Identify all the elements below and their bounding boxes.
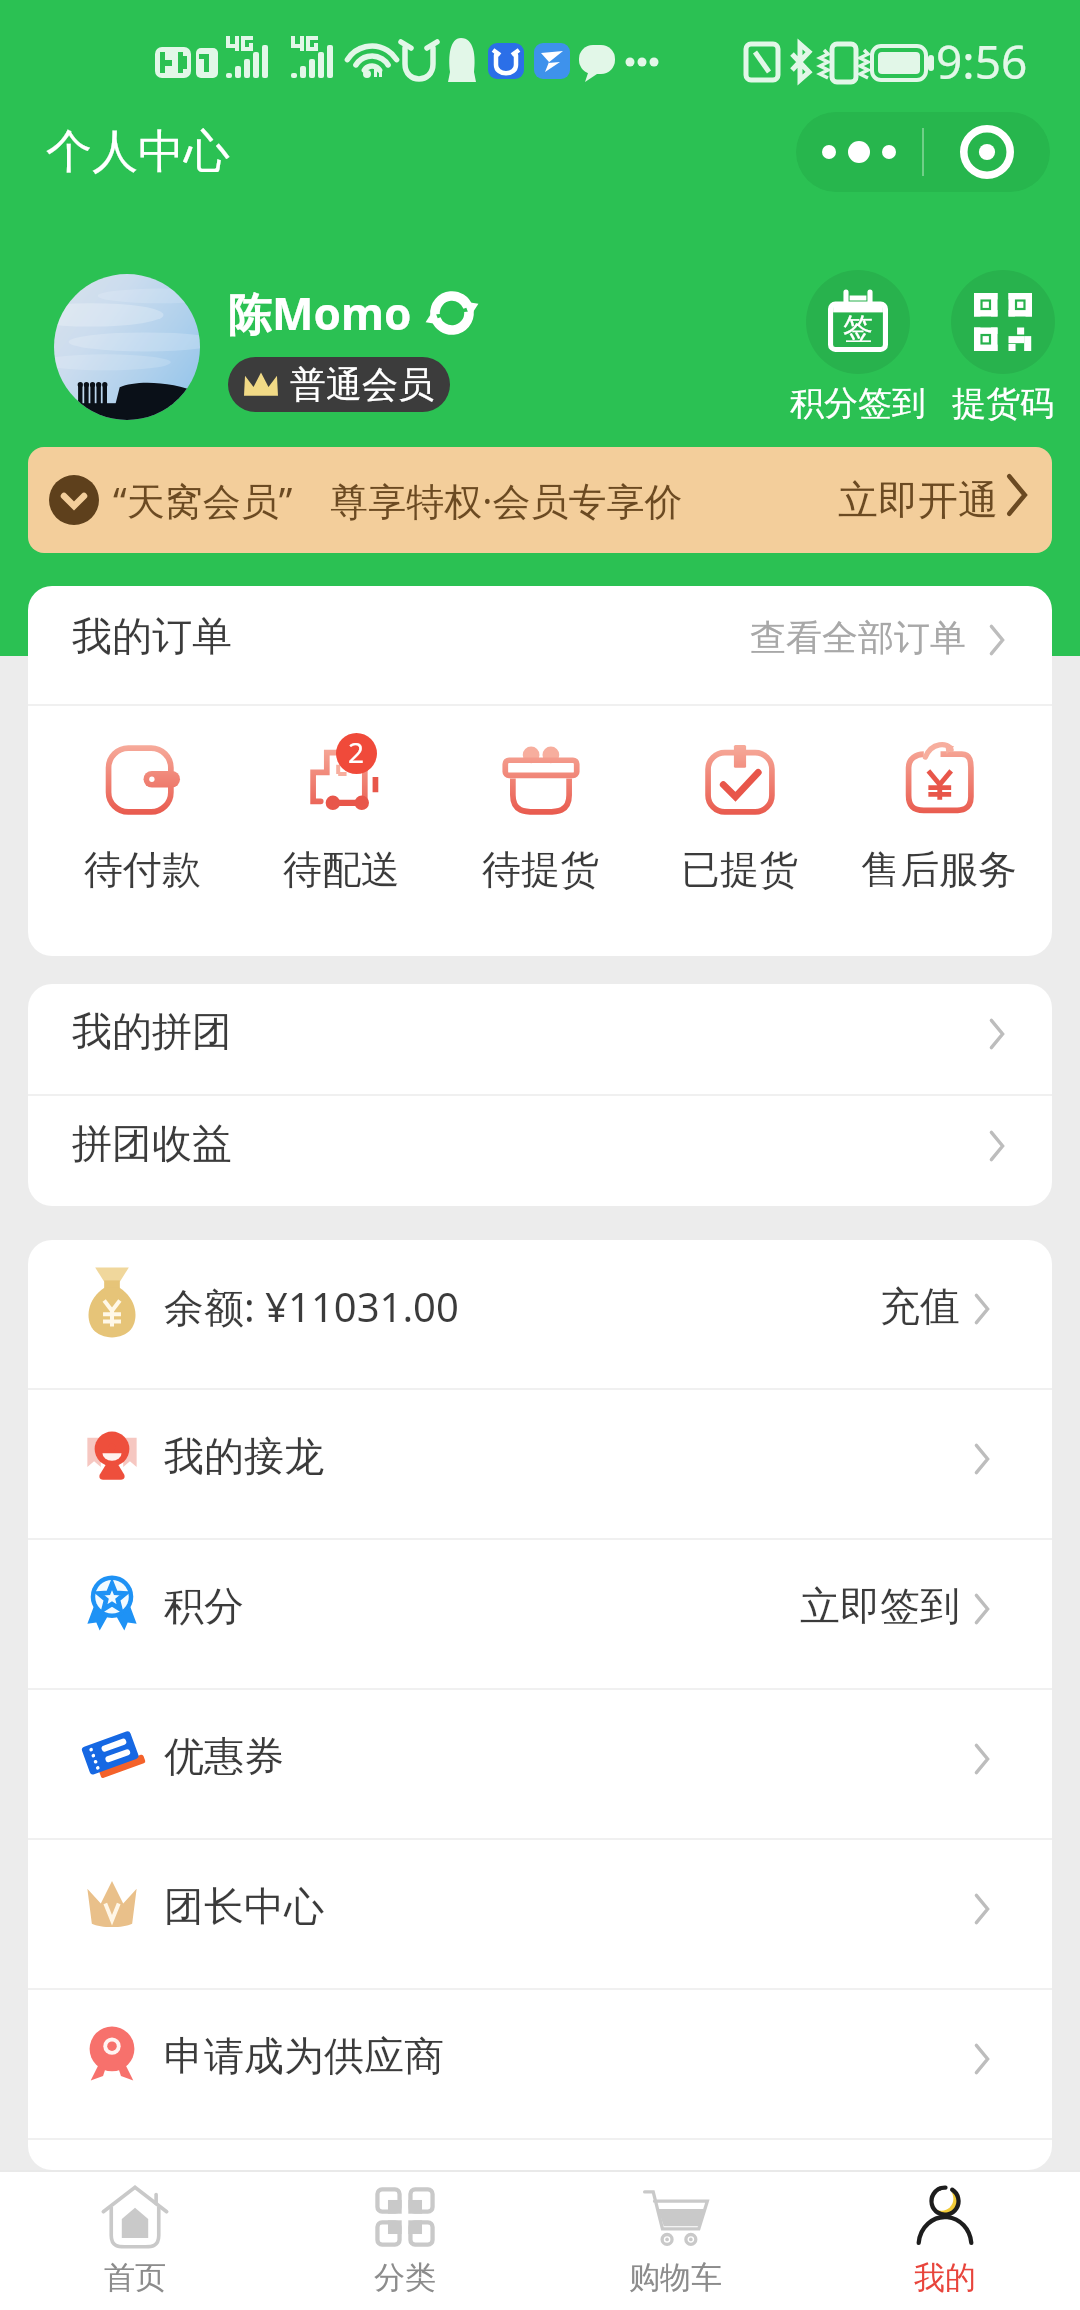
staticText: 普通会员	[290, 362, 434, 407]
staticText: 个人中心	[46, 123, 230, 181]
staticText: 申请成为供应商	[164, 2031, 444, 2081]
staticText: 首页	[104, 2258, 166, 2297]
staticText: 待付款	[84, 845, 201, 894]
staticText: 2	[348, 733, 365, 771]
button[interactable]: 我的	[810, 2172, 1080, 2310]
staticText: 立即签到	[800, 1581, 960, 1631]
button[interactable]: Pickup code	[930, 270, 1075, 425]
staticText: 我的订单	[72, 611, 232, 661]
button[interactable]: 拼团收益	[28, 1096, 1052, 1206]
button[interactable]	[54, 274, 200, 420]
button[interactable]: 已提货	[640, 706, 839, 956]
staticText: 优惠券	[164, 1731, 284, 1781]
staticText: 查看全部订单	[750, 615, 966, 660]
staticText: 提货码	[952, 382, 1054, 425]
button[interactable]: Mini program menu	[796, 112, 1050, 192]
button[interactable]: 购物车	[540, 2172, 810, 2310]
button[interactable]: 我的拼团	[28, 984, 1052, 1094]
staticText: 团长中心	[164, 1881, 324, 1931]
button[interactable]: 普通会员	[244, 362, 434, 407]
staticText: “天窝会员” 尊享特权·会员专享价	[113, 474, 683, 526]
button[interactable]: 首页	[0, 2172, 270, 2310]
staticText: 充值	[880, 1281, 960, 1331]
button[interactable]: 待提货	[441, 706, 640, 956]
button[interactable]: 申请成为供应商	[28, 1990, 1052, 2138]
staticText: 已提货	[681, 845, 798, 894]
button[interactable]: “天窝会员” 尊享特权·会员专享价	[28, 447, 1052, 553]
staticText: 余额: ¥11031.00	[164, 1279, 459, 1334]
staticText: 购物车	[629, 2258, 722, 2297]
staticText: 陈Momo	[228, 283, 412, 343]
button[interactable]: 待付款	[42, 706, 242, 956]
staticText: 积分签到	[790, 382, 926, 425]
button[interactable]: Points check-in	[785, 270, 930, 425]
staticText: 立即开通	[838, 475, 998, 525]
button[interactable]: 团长中心	[28, 1840, 1052, 1988]
staticText: 待提货	[482, 845, 599, 894]
staticText: 签	[843, 310, 873, 348]
staticText: 售后服务	[861, 845, 1017, 894]
staticText: 9:56	[936, 30, 1028, 93]
button[interactable]: 我的接龙	[28, 1390, 1052, 1538]
staticText: 我的拼团	[72, 1006, 232, 1056]
button[interactable]: 余额: ¥11031.00	[28, 1240, 1052, 1388]
staticText: 拼团收益	[72, 1118, 232, 1168]
staticText: 我的	[914, 2258, 976, 2297]
button[interactable]: 优惠券	[28, 1690, 1052, 1838]
button[interactable]: 积分	[28, 1540, 1052, 1688]
button[interactable]: 我的订单	[28, 586, 1052, 704]
staticText: 我的接龙	[164, 1431, 324, 1481]
button[interactable]: 分类	[270, 2172, 540, 2310]
staticText: 分类	[374, 2258, 436, 2297]
staticText: 待配送	[283, 845, 400, 894]
button[interactable]: 2	[242, 706, 441, 956]
staticText: 积分	[164, 1581, 244, 1631]
button[interactable]: 售后服务	[839, 706, 1038, 956]
